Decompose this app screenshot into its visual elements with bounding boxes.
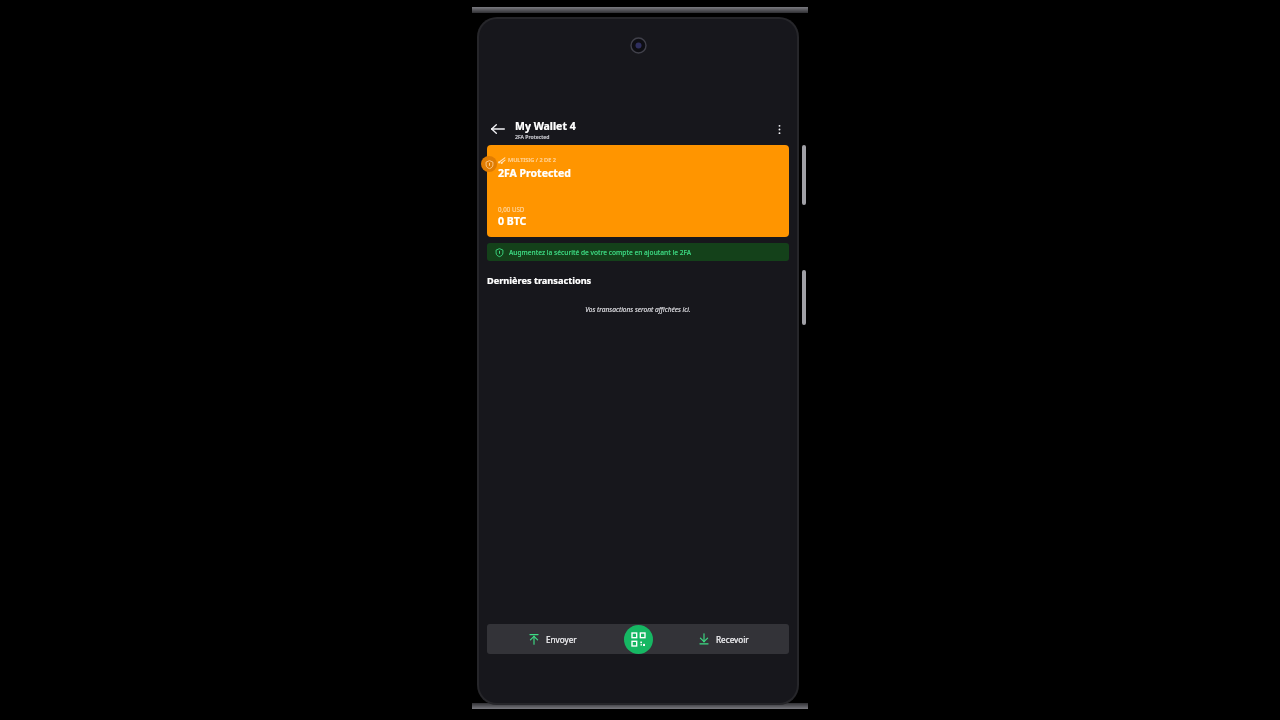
staticText: Recevoir bbox=[716, 634, 749, 645]
staticText: Envoyer bbox=[546, 634, 577, 645]
button[interactable]: Scan QR code bbox=[624, 625, 653, 654]
button[interactable]: Augmentez la sécurité de votre compte en… bbox=[487, 243, 789, 261]
button[interactable]: More options bbox=[765, 115, 793, 143]
staticText: Vos transactions seront affichées ici. bbox=[479, 305, 797, 314]
staticText: MULTISIG / 2 DE 2 bbox=[508, 156, 556, 164]
button[interactable]: MULTISIG / 2 DE 2 bbox=[487, 145, 789, 237]
staticText: 2FA Protected bbox=[498, 166, 571, 180]
staticText: Augmentez la sécurité de votre compte en… bbox=[509, 248, 692, 257]
staticText: Dernières transactions bbox=[487, 274, 592, 287]
button[interactable]: Recevoir bbox=[658, 624, 789, 654]
button[interactable]: Back bbox=[484, 115, 512, 143]
staticText: 0 BTC bbox=[498, 214, 527, 228]
button[interactable]: Envoyer bbox=[487, 624, 618, 654]
staticText: My Wallet 4 bbox=[515, 119, 576, 133]
staticText: 2FA Protected bbox=[515, 133, 550, 140]
staticText: 0,00 USD bbox=[498, 205, 525, 213]
